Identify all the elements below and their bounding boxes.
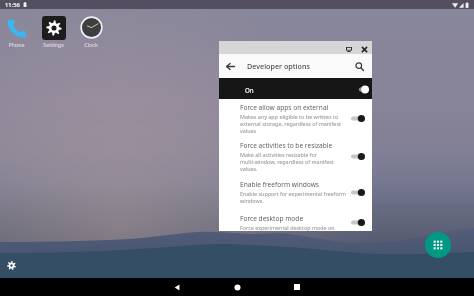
staticText: values	[240, 127, 257, 134]
button[interactable]: Settings	[5, 259, 18, 272]
staticText: Force allow apps on external	[240, 103, 329, 112]
button[interactable]: On	[219, 78, 372, 99]
staticText: Force desktop mode	[240, 214, 304, 223]
button[interactable]: Force desktop mode	[219, 204, 372, 231]
staticText: values.	[240, 165, 258, 172]
button[interactable]: Home	[227, 278, 247, 296]
staticText: Make all activities resizable for	[240, 151, 318, 158]
staticText: Enable support for experimental freeform	[240, 190, 346, 197]
staticText: windows.	[240, 197, 264, 204]
button[interactable]: Search	[348, 55, 370, 77]
button[interactable]: Restore window	[340, 41, 357, 54]
staticText: external storage, regardless of manifest	[240, 120, 341, 127]
button[interactable]: Phone	[0, 15, 35, 48]
button[interactable]: Recents	[287, 278, 307, 296]
button[interactable]: All apps	[425, 232, 451, 258]
staticText: Force activities to be resizable	[240, 141, 333, 150]
staticText: Makes any app eligible to be written to	[240, 113, 339, 120]
button[interactable]: Enable freeform windows	[219, 172, 372, 204]
button[interactable]: Settings	[34, 15, 72, 48]
button[interactable]: Force activities to be resizable	[219, 134, 372, 172]
staticText: Force experimental desktop mode on	[240, 224, 335, 231]
staticText: multi-window, regardless of manifest	[240, 158, 334, 165]
staticText: 11:56	[5, 1, 20, 9]
staticText: Clock	[84, 41, 98, 48]
staticText: Developer options	[247, 61, 310, 71]
button[interactable]: Close	[356, 41, 372, 54]
staticText: On	[245, 86, 254, 94]
staticText: Phone	[8, 41, 25, 48]
staticText: Enable freeform windows	[240, 180, 319, 189]
button[interactable]: Force allow apps on external	[219, 99, 372, 134]
button[interactable]: Back	[219, 55, 241, 77]
button[interactable]: Clock	[72, 15, 110, 48]
staticText: Settings	[43, 41, 64, 48]
button[interactable]: Back	[167, 278, 187, 296]
